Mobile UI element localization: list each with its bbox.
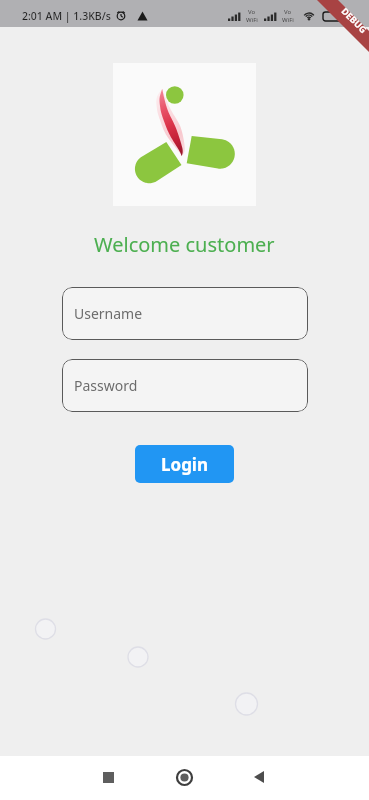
staticText: WiFi xyxy=(246,16,258,24)
staticText: Username xyxy=(74,304,143,323)
staticText: Vo xyxy=(284,8,292,16)
button[interactable]: Back xyxy=(242,760,276,794)
staticText: Login xyxy=(161,453,209,476)
staticText: DEBUG xyxy=(339,5,369,35)
button[interactable]: Password xyxy=(62,359,308,412)
staticText: WiFi xyxy=(282,16,294,24)
staticText: Password xyxy=(74,376,138,395)
staticText: Welcome customer xyxy=(94,231,275,258)
staticText: 2:01 AM | 1.3KB/s xyxy=(22,9,111,23)
button[interactable]: Home xyxy=(167,760,201,794)
staticText: Vo xyxy=(248,8,256,16)
button[interactable]: Username xyxy=(62,287,308,340)
button[interactable]: Recent apps xyxy=(91,760,125,794)
button[interactable]: Login xyxy=(135,445,234,483)
